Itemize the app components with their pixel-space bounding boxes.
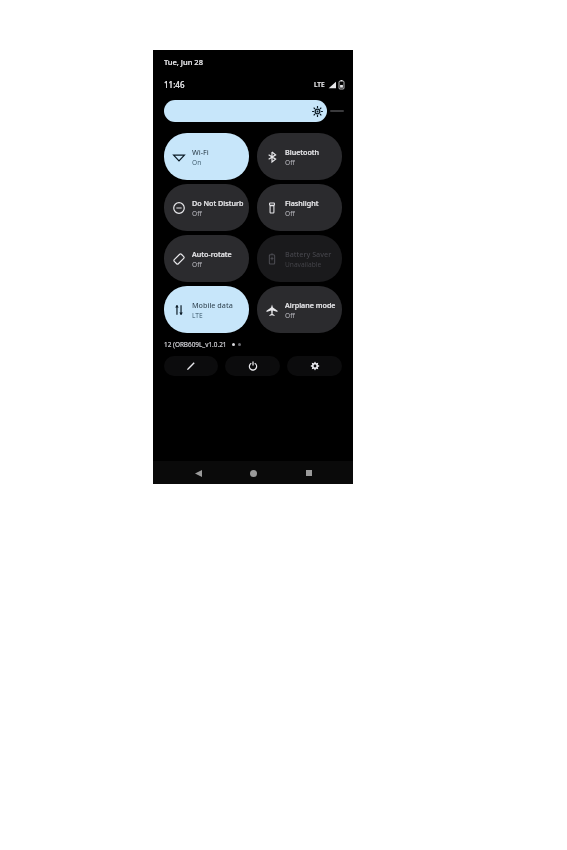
staticText: Off (285, 158, 295, 167)
staticText: Do Not Disturb (192, 198, 244, 208)
button[interactable]: Home (242, 462, 264, 484)
button[interactable]: Auto-rotate (164, 235, 249, 282)
staticText: Bluetooth (285, 147, 320, 157)
staticText: LTE (192, 311, 203, 320)
button[interactable]: Mobile data (164, 286, 249, 333)
staticText: Flashlight (285, 198, 319, 208)
staticText: Unavailable (285, 260, 322, 269)
staticText: Airplane mode (285, 300, 336, 310)
staticText: Off (285, 209, 295, 218)
staticText: Wi-Fi (192, 147, 209, 157)
button[interactable]: Recents (298, 462, 320, 484)
staticText: On (192, 158, 202, 167)
button[interactable]: Flashlight (257, 184, 342, 231)
staticText: Mobile data (192, 300, 233, 310)
button[interactable]: Do Not Disturb (164, 184, 249, 231)
staticText: Auto-rotate (192, 249, 232, 259)
staticText: Off (192, 260, 202, 269)
staticText: Tue, Jun 28 (164, 57, 203, 67)
button[interactable]: Power (225, 356, 280, 376)
button[interactable]: Airplane mode (257, 286, 342, 333)
staticText: LTE (314, 80, 325, 89)
button[interactable]: Edit tiles (164, 356, 218, 376)
staticText: 12 (ORB609L_v1.0.21 (164, 340, 227, 349)
button[interactable]: Bluetooth (257, 133, 342, 180)
staticText: Off (192, 209, 202, 218)
button[interactable] (164, 100, 327, 122)
button[interactable]: Wi-Fi (164, 133, 249, 180)
button[interactable]: Back (187, 462, 209, 484)
staticText: Off (285, 311, 295, 320)
button[interactable]: Settings (287, 356, 342, 376)
staticText: 11:46 (164, 79, 185, 90)
button[interactable]: Battery Saver (257, 235, 342, 282)
staticText: Battery Saver (285, 249, 332, 259)
